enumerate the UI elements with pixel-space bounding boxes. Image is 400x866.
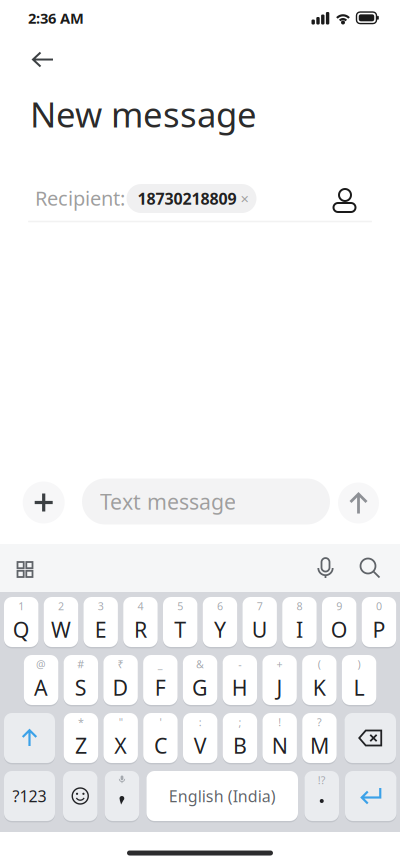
button[interactable]: 18730218809 bbox=[126, 184, 256, 213]
staticText: ( bbox=[318, 657, 321, 671]
button[interactable]: 7 bbox=[242, 597, 277, 647]
staticText: Text message bbox=[100, 487, 236, 516]
staticText: R bbox=[134, 615, 147, 644]
button[interactable]: - bbox=[223, 655, 257, 705]
button[interactable]: + bbox=[262, 655, 297, 705]
button[interactable]: ? bbox=[302, 713, 337, 763]
button[interactable]: 9 bbox=[322, 597, 356, 647]
staticText: Recipient: bbox=[35, 185, 125, 211]
button[interactable]: * bbox=[64, 713, 98, 763]
button[interactable]: ?123 bbox=[4, 771, 55, 821]
staticText: W bbox=[51, 615, 71, 644]
staticText: 3 bbox=[98, 599, 104, 613]
button[interactable] bbox=[4, 713, 55, 763]
button[interactable]: ; bbox=[223, 713, 257, 763]
staticText: S bbox=[75, 673, 87, 702]
button[interactable]: 6 bbox=[203, 597, 237, 647]
button[interactable]: ! bbox=[262, 713, 297, 763]
button[interactable] bbox=[332, 188, 357, 212]
button[interactable]: @ bbox=[24, 655, 58, 705]
button[interactable] bbox=[359, 557, 380, 578]
staticText: G bbox=[192, 673, 208, 702]
staticText: 2 bbox=[58, 599, 64, 613]
staticText: X bbox=[114, 731, 127, 760]
staticText: J bbox=[277, 673, 283, 702]
button[interactable]: 4 bbox=[123, 597, 158, 647]
button[interactable]: 1 bbox=[4, 597, 38, 647]
button[interactable]: !? bbox=[304, 771, 339, 821]
staticText: : bbox=[199, 715, 202, 729]
staticText: Z bbox=[75, 731, 87, 760]
button[interactable]: Text message bbox=[82, 478, 330, 524]
button[interactable]: ₹ bbox=[103, 655, 138, 705]
staticText: ' bbox=[159, 715, 161, 729]
button[interactable]: 0 bbox=[362, 597, 396, 647]
staticText: # bbox=[77, 657, 84, 671]
staticText: D bbox=[113, 673, 129, 702]
button[interactable]: 3 bbox=[83, 597, 118, 647]
button[interactable] bbox=[105, 771, 139, 821]
staticText: C bbox=[154, 731, 167, 760]
staticText: 9 bbox=[336, 599, 342, 613]
staticText: 1 bbox=[18, 599, 24, 613]
staticText: + bbox=[277, 657, 283, 671]
button[interactable]: ( bbox=[302, 655, 336, 705]
button[interactable]: 5 bbox=[163, 597, 197, 647]
button[interactable]: _ bbox=[143, 655, 178, 705]
button[interactable]: & bbox=[183, 655, 217, 705]
button[interactable]: " bbox=[103, 713, 138, 763]
staticText: ! bbox=[278, 715, 281, 729]
staticText: " bbox=[119, 715, 123, 729]
staticText: N bbox=[272, 731, 288, 760]
staticText: U bbox=[252, 615, 268, 644]
button[interactable]: English (India) bbox=[146, 771, 298, 821]
staticText: English (India) bbox=[169, 785, 276, 807]
staticText: 7 bbox=[257, 599, 263, 613]
staticText: L bbox=[354, 673, 365, 702]
staticText: K bbox=[313, 673, 326, 702]
staticText: 8 bbox=[296, 599, 302, 613]
staticText: ; bbox=[238, 715, 241, 729]
button[interactable] bbox=[315, 557, 335, 579]
staticText: A bbox=[34, 673, 48, 702]
staticText: 18730218809 bbox=[137, 188, 236, 209]
staticText: Y bbox=[214, 615, 226, 644]
staticText: 4 bbox=[137, 599, 143, 613]
button[interactable]: # bbox=[64, 655, 98, 705]
staticText: I bbox=[296, 615, 303, 644]
staticText: Q bbox=[13, 615, 30, 644]
staticText: ? bbox=[317, 715, 322, 729]
staticText: _ bbox=[158, 657, 163, 671]
staticText: E bbox=[95, 615, 107, 644]
button[interactable] bbox=[345, 771, 396, 821]
staticText: T bbox=[174, 615, 186, 644]
button[interactable] bbox=[16, 561, 33, 578]
staticText: @ bbox=[36, 657, 46, 671]
staticText: 6 bbox=[217, 599, 223, 613]
button[interactable]: ' bbox=[143, 713, 178, 763]
staticText: M bbox=[310, 731, 329, 760]
button[interactable] bbox=[32, 52, 54, 67]
staticText: New message bbox=[30, 91, 257, 137]
button[interactable] bbox=[63, 771, 97, 821]
staticText: & bbox=[196, 657, 204, 671]
button[interactable]: 2 bbox=[44, 597, 78, 647]
button[interactable]: 8 bbox=[282, 597, 317, 647]
staticText: * bbox=[78, 715, 84, 729]
button[interactable] bbox=[23, 481, 65, 523]
staticText: O bbox=[331, 615, 348, 644]
button[interactable] bbox=[344, 713, 396, 763]
button[interactable]: ) bbox=[342, 655, 376, 705]
staticText: 0 bbox=[376, 599, 382, 613]
staticText: V bbox=[194, 731, 207, 760]
button[interactable] bbox=[338, 482, 379, 523]
button[interactable]: : bbox=[183, 713, 217, 763]
staticText: !? bbox=[318, 773, 326, 787]
staticText: × bbox=[240, 189, 248, 208]
staticText: 5 bbox=[177, 599, 183, 613]
staticText: ) bbox=[358, 657, 361, 671]
staticText: B bbox=[233, 731, 247, 760]
staticText: F bbox=[155, 673, 166, 702]
staticText: P bbox=[372, 615, 385, 644]
staticText: H bbox=[232, 673, 248, 702]
